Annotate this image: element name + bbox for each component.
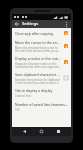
- staticText: Moves the character base cursor to the e…: [15, 46, 61, 52]
- staticText: Display a notice in the notification are…: [15, 56, 61, 61]
- button[interactable]: Enabled: [63, 43, 69, 49]
- button[interactable]: Navigate up: [14, 21, 20, 27]
- button[interactable]: Enabled: [63, 30, 69, 36]
- staticText: Saves the string text to the clipboard i…: [15, 78, 61, 84]
- button[interactable]: Home: [37, 127, 46, 136]
- button[interactable]: Enabled: [63, 59, 69, 65]
- button[interactable]: Back: [20, 127, 29, 136]
- button[interactable]: Close app after copying: [12, 28, 71, 38]
- staticText: Settings: [22, 21, 39, 27]
- button[interactable]: Disabled: [63, 75, 69, 81]
- staticText: Move the cursor to the end of the senten…: [15, 40, 61, 45]
- button[interactable]: Save clipboard characters when sharing a…: [12, 70, 71, 86]
- button[interactable]: Display a notice in the notification are…: [12, 54, 71, 70]
- staticText: 100: [15, 108, 20, 112]
- staticText: Shows the character notice on the notifi…: [15, 62, 61, 68]
- button[interactable]: Number of saved lists (maximum): [12, 100, 71, 114]
- staticText: Tab to display a display: [15, 88, 53, 93]
- button[interactable]: Recent apps: [54, 127, 63, 136]
- staticText: Close app after copying: [15, 31, 54, 36]
- button[interactable]: More options: [63, 21, 69, 27]
- staticText: Save clipboard characters when sharing a…: [15, 72, 61, 77]
- button[interactable]: Tab to display a display: [12, 86, 71, 100]
- staticText: Connect Text: [15, 94, 31, 98]
- button[interactable]: Move the cursor to the end of the senten…: [12, 38, 71, 54]
- staticText: Number of saved lists (maximum): [15, 102, 69, 107]
